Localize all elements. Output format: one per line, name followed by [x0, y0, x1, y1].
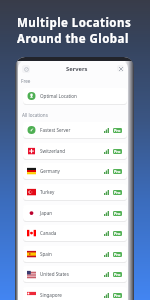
staticText: All locations	[22, 112, 48, 118]
button[interactable]: Singapore	[23, 287, 127, 300]
button[interactable]: Close	[117, 65, 124, 72]
staticText: Pro	[114, 252, 121, 257]
staticText: Free	[21, 78, 31, 84]
button[interactable]: Switzerland	[23, 143, 127, 159]
staticText: Pro	[114, 293, 121, 298]
staticText: Singapore	[40, 292, 62, 298]
staticText: Switzerland	[40, 148, 66, 154]
staticText: Canada	[40, 230, 57, 236]
button[interactable]: Canada	[23, 225, 127, 241]
staticText: Pro	[114, 149, 121, 154]
button[interactable]: Spain	[23, 246, 127, 262]
button[interactable]: Turkey	[23, 184, 127, 200]
staticText: Around the Global	[17, 31, 129, 47]
staticText: United States	[40, 271, 69, 277]
staticText: Fastest Server	[40, 127, 71, 133]
staticText: Spain	[40, 251, 52, 257]
button[interactable]: United States	[23, 266, 127, 282]
button[interactable]: Optimal Location	[23, 88, 127, 104]
button[interactable]: Germany	[23, 163, 127, 179]
staticText: Japan	[40, 210, 53, 216]
staticText: Pro	[114, 169, 121, 174]
staticText: Turkey	[40, 189, 55, 195]
staticText: Multiple Locations	[17, 15, 132, 31]
staticText: Pro	[114, 128, 121, 133]
staticText: Pro	[114, 272, 121, 277]
button[interactable]: Fastest Server	[23, 122, 127, 138]
staticText: Optimal Location	[40, 93, 77, 99]
staticText: Pro	[114, 231, 121, 236]
button[interactable]: History	[22, 65, 30, 73]
staticText: Pro	[114, 190, 121, 195]
staticText: Servers	[66, 65, 88, 73]
button[interactable]: Japan	[23, 205, 127, 221]
staticText: Pro	[114, 211, 121, 216]
staticText: Germany	[40, 168, 60, 174]
